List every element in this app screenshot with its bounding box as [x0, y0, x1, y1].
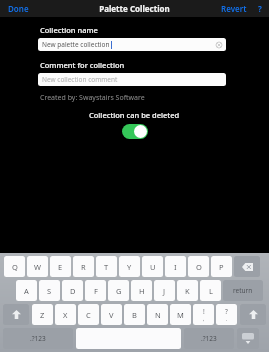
button[interactable]: Hide keyboard	[237, 328, 259, 349]
staticText: G	[116, 286, 122, 296]
staticText: V	[109, 310, 114, 320]
button[interactable]: .?123	[3, 328, 73, 349]
staticText: return	[233, 286, 253, 295]
button[interactable]: Backspace	[234, 256, 260, 277]
button[interactable]: I	[165, 256, 186, 277]
staticText: ?	[258, 3, 262, 14]
staticText: C	[86, 310, 91, 320]
staticText: Revert	[221, 3, 247, 14]
button[interactable]: O	[188, 256, 209, 277]
staticText: New collection comment	[42, 75, 118, 84]
button[interactable]: M	[170, 304, 191, 325]
staticText: K	[185, 286, 190, 296]
button[interactable]: X	[55, 304, 76, 325]
staticText: L	[209, 286, 213, 296]
button[interactable]: E	[50, 256, 71, 277]
button[interactable]: V	[101, 304, 122, 325]
button[interactable]: C	[78, 304, 99, 325]
other: Clear text	[216, 42, 222, 48]
button[interactable]: B	[124, 304, 145, 325]
staticText: ,	[203, 316, 205, 323]
button[interactable]: ?	[216, 304, 237, 325]
button[interactable]: Help	[255, 1, 265, 16]
button[interactable]: T	[96, 256, 117, 277]
staticText: Done	[8, 3, 29, 14]
staticText: M	[177, 310, 184, 320]
staticText: A	[24, 286, 29, 296]
staticText: New palette collection	[42, 40, 110, 49]
staticText: Palette Collection	[99, 3, 170, 14]
staticText: E	[58, 262, 63, 272]
staticText: T	[104, 262, 109, 272]
staticText: W	[34, 262, 41, 272]
staticText: .	[226, 316, 228, 323]
staticText: S	[47, 286, 52, 296]
button[interactable]: A	[16, 280, 37, 301]
button[interactable]: U	[142, 256, 163, 277]
staticText: Y	[127, 262, 132, 272]
staticText: Collection can be deleted	[89, 110, 180, 120]
button[interactable]: Shift	[3, 304, 29, 325]
button[interactable]: Y	[119, 256, 140, 277]
button[interactable]: W	[27, 256, 48, 277]
button[interactable]: New collection comment	[38, 73, 226, 86]
staticText: ?	[225, 307, 228, 316]
staticText: Comment for collection	[40, 60, 125, 70]
button[interactable]: Space	[76, 328, 181, 349]
staticText: .?123	[201, 334, 217, 343]
staticText: Z	[40, 310, 45, 320]
button[interactable]: New palette collection	[38, 38, 226, 51]
button[interactable]: Revert	[218, 1, 250, 16]
button[interactable]: H	[131, 280, 152, 301]
staticText: F	[94, 286, 98, 296]
button[interactable]: F	[85, 280, 106, 301]
button[interactable]: G	[108, 280, 129, 301]
button[interactable]: Shift	[240, 304, 266, 325]
button[interactable]: Z	[32, 304, 53, 325]
button[interactable]: Collection can be deleted toggle	[122, 124, 148, 139]
button[interactable]: J	[154, 280, 175, 301]
button[interactable]: S	[39, 280, 60, 301]
staticText: !	[203, 307, 205, 316]
button[interactable]: N	[147, 304, 168, 325]
button[interactable]: return	[223, 280, 263, 301]
button[interactable]: K	[177, 280, 198, 301]
button[interactable]: Done	[4, 1, 33, 16]
staticText: N	[155, 310, 161, 320]
staticText: X	[63, 310, 68, 320]
button[interactable]: Q	[4, 256, 25, 277]
staticText: D	[70, 286, 76, 296]
staticText: U	[150, 262, 156, 272]
staticText: B	[132, 310, 137, 320]
staticText: H	[139, 286, 145, 296]
staticText: R	[81, 262, 86, 272]
button[interactable]: !	[193, 304, 214, 325]
button[interactable]: R	[73, 256, 94, 277]
staticText: Q	[12, 262, 18, 272]
button[interactable]: L	[200, 280, 221, 301]
button[interactable]: D	[62, 280, 83, 301]
staticText: .?123	[30, 334, 46, 343]
button[interactable]: P	[211, 256, 232, 277]
staticText: O	[196, 262, 202, 272]
button[interactable]: .?123	[184, 328, 234, 349]
staticText: Collection name	[40, 25, 98, 35]
staticText: I	[174, 262, 177, 272]
staticText: P	[219, 262, 224, 272]
staticText: J	[163, 286, 166, 296]
staticText: Created by: Swaystairs Software	[40, 93, 145, 103]
